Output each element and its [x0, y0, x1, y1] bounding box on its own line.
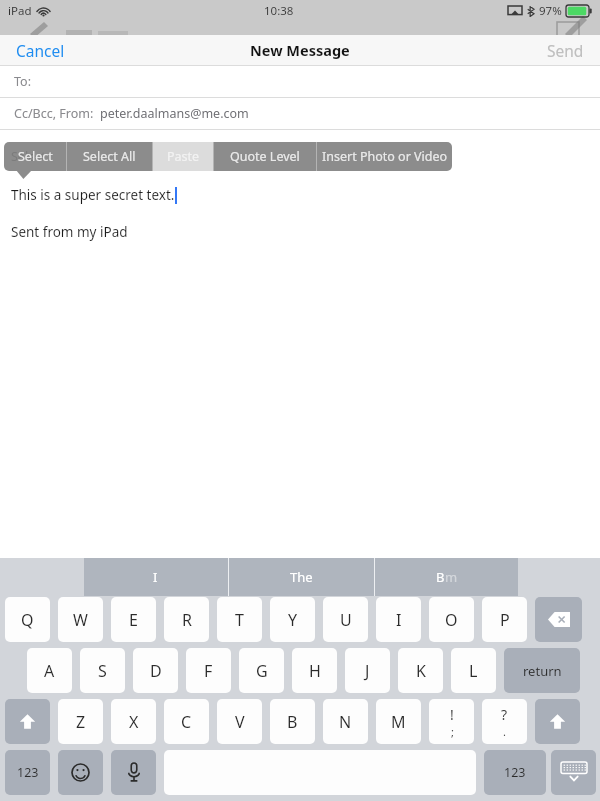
staticText: 10:38 — [264, 3, 294, 19]
staticText: 123 — [17, 764, 39, 781]
button[interactable]: E — [111, 597, 156, 642]
staticText: This is a super secret text. — [11, 186, 175, 204]
button[interactable]: Paste — [153, 142, 213, 171]
staticText: C — [181, 711, 192, 733]
staticText: iPad — [8, 3, 32, 19]
button[interactable]: 123 — [5, 750, 50, 795]
button[interactable]: Cc/Bcc, From: — [0, 98, 600, 129]
staticText: T — [235, 609, 244, 631]
staticText: Cc/Bcc, From: — [14, 105, 94, 122]
staticText: H — [309, 660, 321, 682]
button[interactable]: ? — [482, 699, 527, 744]
staticText: A — [44, 660, 55, 682]
staticText: B — [436, 568, 445, 586]
button[interactable]: F — [186, 648, 231, 693]
staticText: Select — [18, 148, 53, 165]
staticText: I — [396, 609, 402, 631]
staticText: New Message — [250, 40, 350, 60]
staticText: F — [204, 660, 213, 682]
staticText: V — [235, 711, 245, 733]
button[interactable]: Emoji — [58, 750, 103, 795]
button[interactable]: H — [292, 648, 337, 693]
button[interactable]: Cancel — [0, 36, 75, 65]
staticText: O — [445, 609, 458, 631]
button[interactable]: J — [345, 648, 390, 693]
staticText: J — [365, 660, 370, 682]
button[interactable]: W — [58, 597, 103, 642]
staticText: return — [523, 662, 562, 680]
button[interactable]: Q — [5, 597, 50, 642]
staticText: 123 — [504, 764, 526, 781]
button[interactable]: Z — [58, 699, 103, 744]
button[interactable]: Insert Photo or Video — [317, 142, 452, 171]
staticText: E — [129, 609, 138, 631]
button[interactable]: M — [376, 699, 421, 744]
staticText: . — [503, 724, 506, 739]
staticText: U — [340, 609, 352, 631]
button[interactable]: Select — [4, 142, 66, 171]
button[interactable]: return — [504, 648, 580, 693]
button[interactable]: P — [482, 597, 527, 642]
staticText: S — [98, 660, 107, 682]
staticText: W — [73, 609, 88, 631]
staticText: ? — [501, 705, 508, 724]
button[interactable]: Select All — [67, 142, 152, 171]
button[interactable]: G — [239, 648, 284, 693]
staticText: X — [129, 711, 139, 733]
staticText: Select — [11, 148, 46, 165]
button[interactable]: X — [111, 699, 156, 744]
button[interactable]: C — [164, 699, 209, 744]
staticText: G — [256, 660, 268, 682]
staticText: D — [150, 660, 162, 682]
button[interactable]: The — [229, 558, 373, 596]
button[interactable]: D — [133, 648, 178, 693]
button[interactable]: To: — [0, 66, 600, 97]
button[interactable]: Send — [537, 36, 600, 65]
staticText: B — [287, 711, 298, 733]
staticText: ! — [450, 705, 454, 724]
staticText: K — [416, 660, 426, 682]
staticText: I — [153, 568, 158, 586]
button[interactable]: A — [27, 648, 72, 693]
button[interactable]: N — [323, 699, 368, 744]
staticText: Select All — [83, 148, 136, 165]
button[interactable]: T — [217, 597, 262, 642]
staticText: R — [182, 609, 192, 631]
button[interactable]: Quote Level — [214, 142, 316, 171]
staticText: Y — [288, 609, 298, 631]
button[interactable]: Dictate — [111, 750, 156, 795]
staticText: L — [469, 660, 478, 682]
staticText: Z — [76, 711, 86, 733]
button[interactable]: L — [451, 648, 496, 693]
button[interactable]: ! — [429, 699, 474, 744]
staticText: P — [500, 609, 510, 631]
staticText: N — [339, 711, 352, 733]
button[interactable]: Y — [270, 597, 315, 642]
button[interactable]: U — [323, 597, 368, 642]
button[interactable]: Backspace — [535, 597, 582, 642]
staticText: Quote Level — [230, 148, 300, 165]
staticText: Q — [21, 609, 34, 631]
staticText: Sent from my iPad — [11, 223, 128, 241]
staticText: Paste — [167, 148, 200, 165]
button[interactable]: V — [217, 699, 262, 744]
button[interactable]: Shift — [5, 699, 50, 744]
button[interactable]: B — [270, 699, 315, 744]
button[interactable]: I — [376, 597, 421, 642]
button[interactable]: 123 — [484, 750, 546, 795]
button[interactable]: B — [375, 558, 518, 596]
staticText: ; — [451, 724, 454, 739]
button[interactable]: S — [80, 648, 125, 693]
button[interactable]: K — [398, 648, 443, 693]
button[interactable]: I — [84, 558, 227, 596]
button[interactable]: Shift — [535, 699, 580, 744]
staticText: M — [391, 711, 406, 733]
button[interactable]: R — [164, 597, 209, 642]
staticText: m — [445, 568, 458, 586]
staticText: Insert Photo or Video — [322, 148, 448, 165]
button[interactable]: O — [429, 597, 474, 642]
staticText: To: — [14, 73, 31, 90]
staticText: 97% — [539, 3, 562, 19]
button[interactable]: Hide keyboard — [551, 750, 596, 795]
